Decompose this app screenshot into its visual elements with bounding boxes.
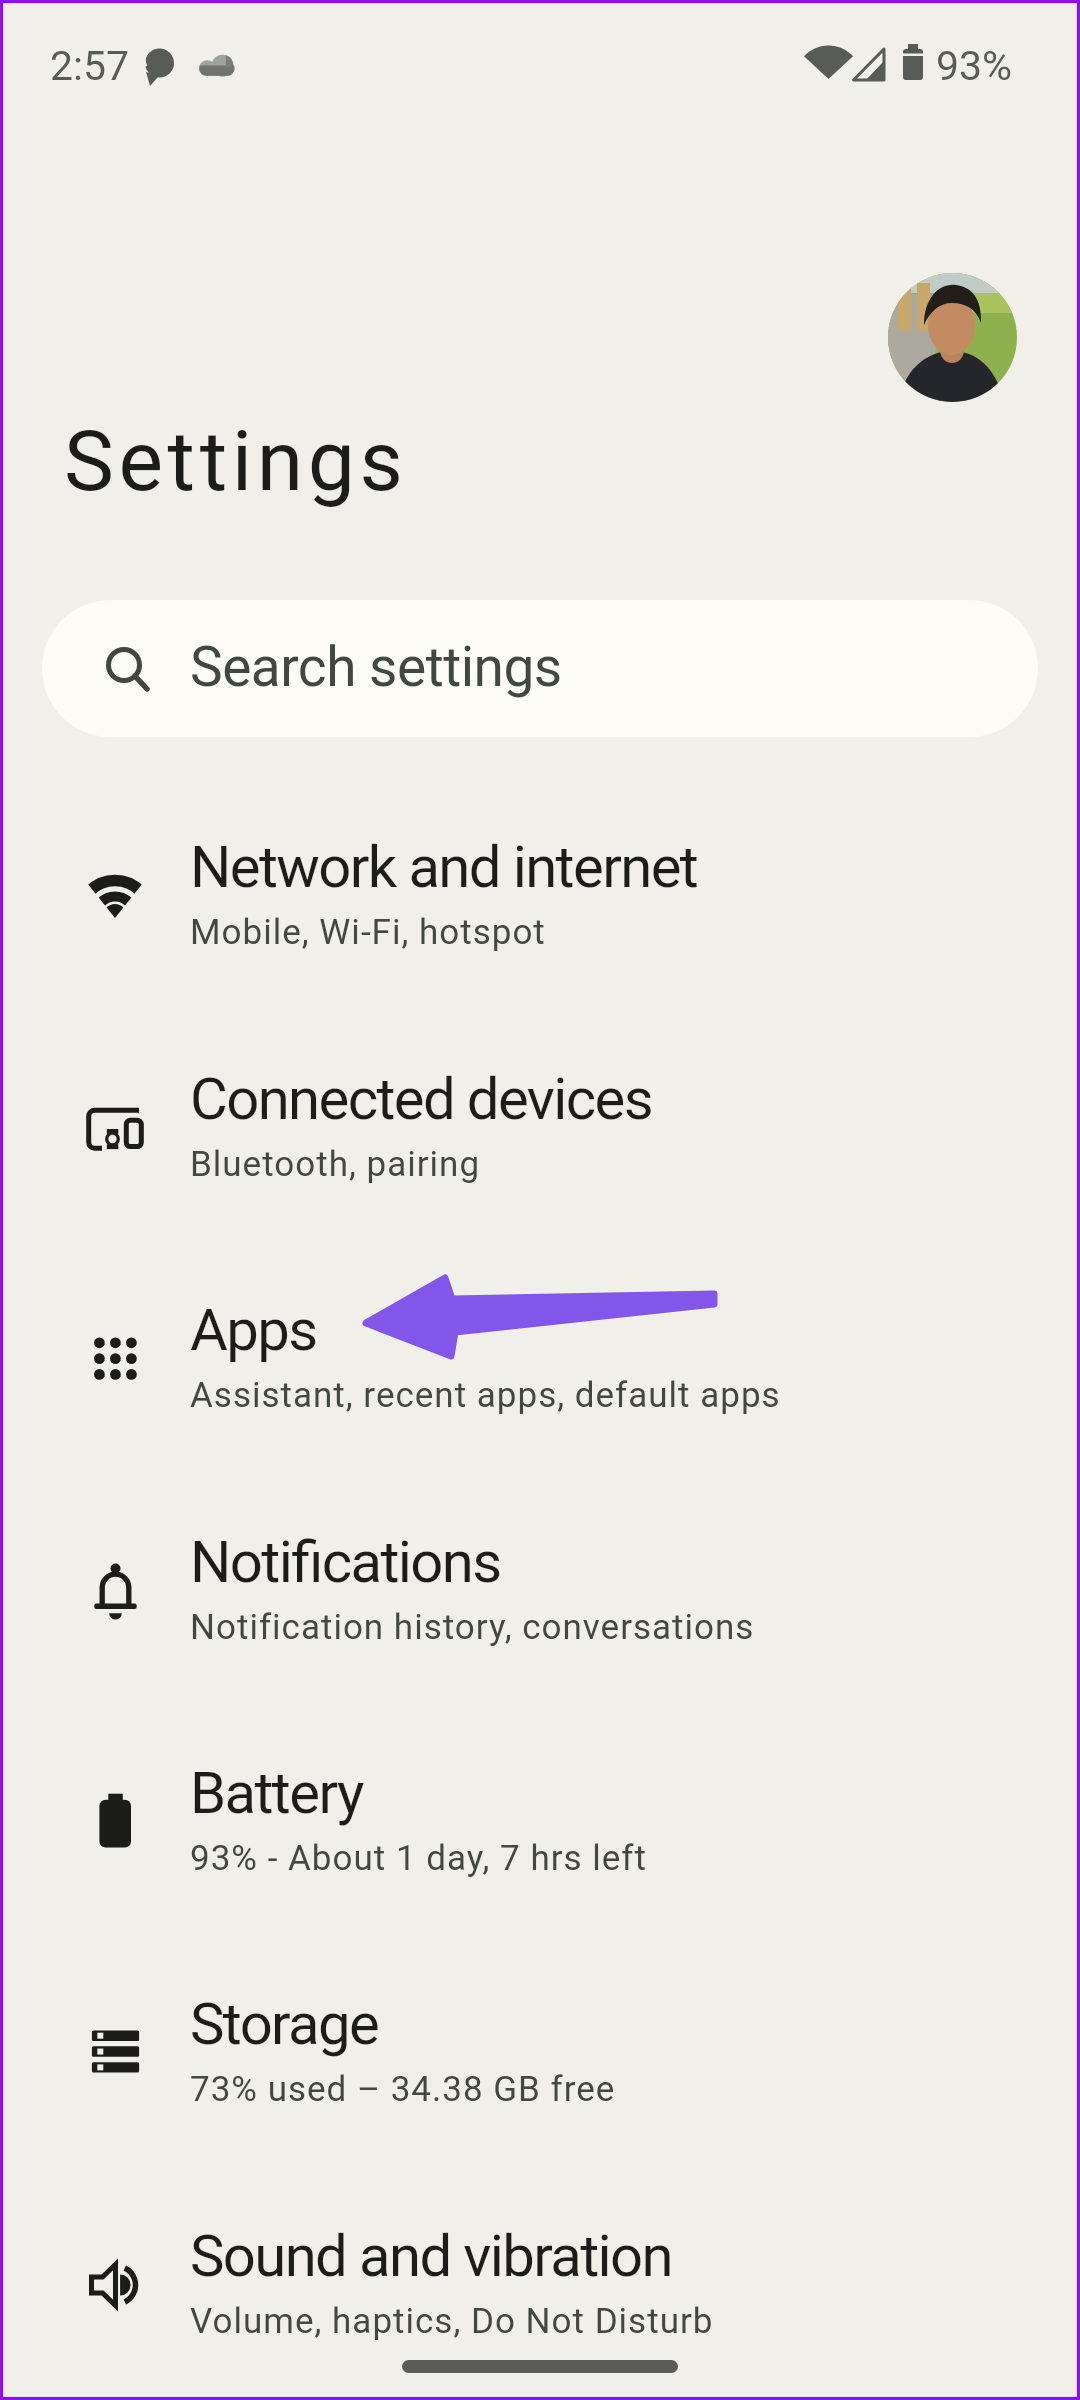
staticText: 2:57 [50, 42, 130, 90]
staticText: Settings [64, 412, 408, 510]
staticText: Search settings [190, 635, 562, 699]
staticText: Notifications [190, 1528, 501, 1596]
staticText: 73% used – 34.38 GB free [190, 2069, 616, 2110]
staticText: Assistant, recent apps, default apps [190, 1375, 781, 1416]
staticText: 93% [936, 42, 1013, 90]
staticText: Battery [190, 1759, 363, 1827]
button[interactable]: Connected devices [0, 1012, 1080, 1243]
staticText: Network and internet [190, 833, 698, 901]
button[interactable]: Battery [0, 1706, 1080, 1937]
button[interactable] [402, 2360, 678, 2373]
staticText: Connected devices [190, 1065, 652, 1133]
staticText: Volume, haptics, Do Not Disturb [190, 2301, 714, 2342]
staticText: Notification history, conversations [190, 1607, 755, 1648]
button[interactable]: Notifications [0, 1475, 1080, 1706]
staticText: Mobile, Wi-Fi, hotspot [190, 912, 546, 953]
button[interactable] [42, 600, 1038, 737]
button[interactable] [888, 273, 1017, 402]
button[interactable]: Storage [0, 1937, 1080, 2168]
button[interactable]: Apps [0, 1243, 1080, 1474]
staticText: Apps [190, 1296, 317, 1364]
staticText: Storage [190, 1990, 379, 2058]
staticText: Bluetooth, pairing [190, 1144, 481, 1185]
staticText: Sound and vibration [190, 2222, 672, 2290]
button[interactable]: Sound and vibration [0, 2169, 1080, 2400]
button[interactable]: Network and internet [0, 780, 1080, 1011]
staticText: 93% - About 1 day, 7 hrs left [190, 1838, 647, 1879]
